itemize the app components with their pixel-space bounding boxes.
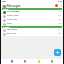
staticText: 3:20 [58,23,61,25]
button[interactable]: Calls [23,59,27,64]
staticText: Project Team [7,14,19,17]
staticText: 4:55 [58,19,61,21]
button[interactable]: EARLIER [2,26,62,28]
button[interactable]: Settings [50,59,54,64]
staticText: TODAY [3,8,9,10]
button[interactable]: Alice Morgan [2,10,62,14]
button[interactable]: Chats [10,59,14,64]
button[interactable]: Groups [37,59,41,64]
button[interactable]: Sam Rivera [2,28,62,32]
staticText: Sam Rivera [7,28,18,31]
button[interactable]: Menu [2,4,6,8]
button[interactable]: Mom [2,22,62,26]
staticText: Alice Morgan [7,10,20,13]
button[interactable]: Compose new message [54,49,61,56]
button[interactable]: TODAY [2,8,62,10]
staticText: 6:42 [58,11,61,13]
staticText: Tue [58,29,61,31]
staticText: David Chen [7,18,18,21]
button[interactable]: Project Team [2,14,62,18]
button[interactable]: Book Club [2,32,62,36]
staticText: Messages [7,4,55,8]
button[interactable]: Account [55,4,58,7]
staticText: EARLIER [3,26,10,28]
button[interactable]: Search [59,4,62,7]
staticText: Book Club [7,32,17,35]
staticText: Mom [7,22,12,25]
staticText: Mon [58,33,61,35]
staticText: 5:10 [58,15,61,17]
button[interactable]: David Chen [2,18,62,22]
